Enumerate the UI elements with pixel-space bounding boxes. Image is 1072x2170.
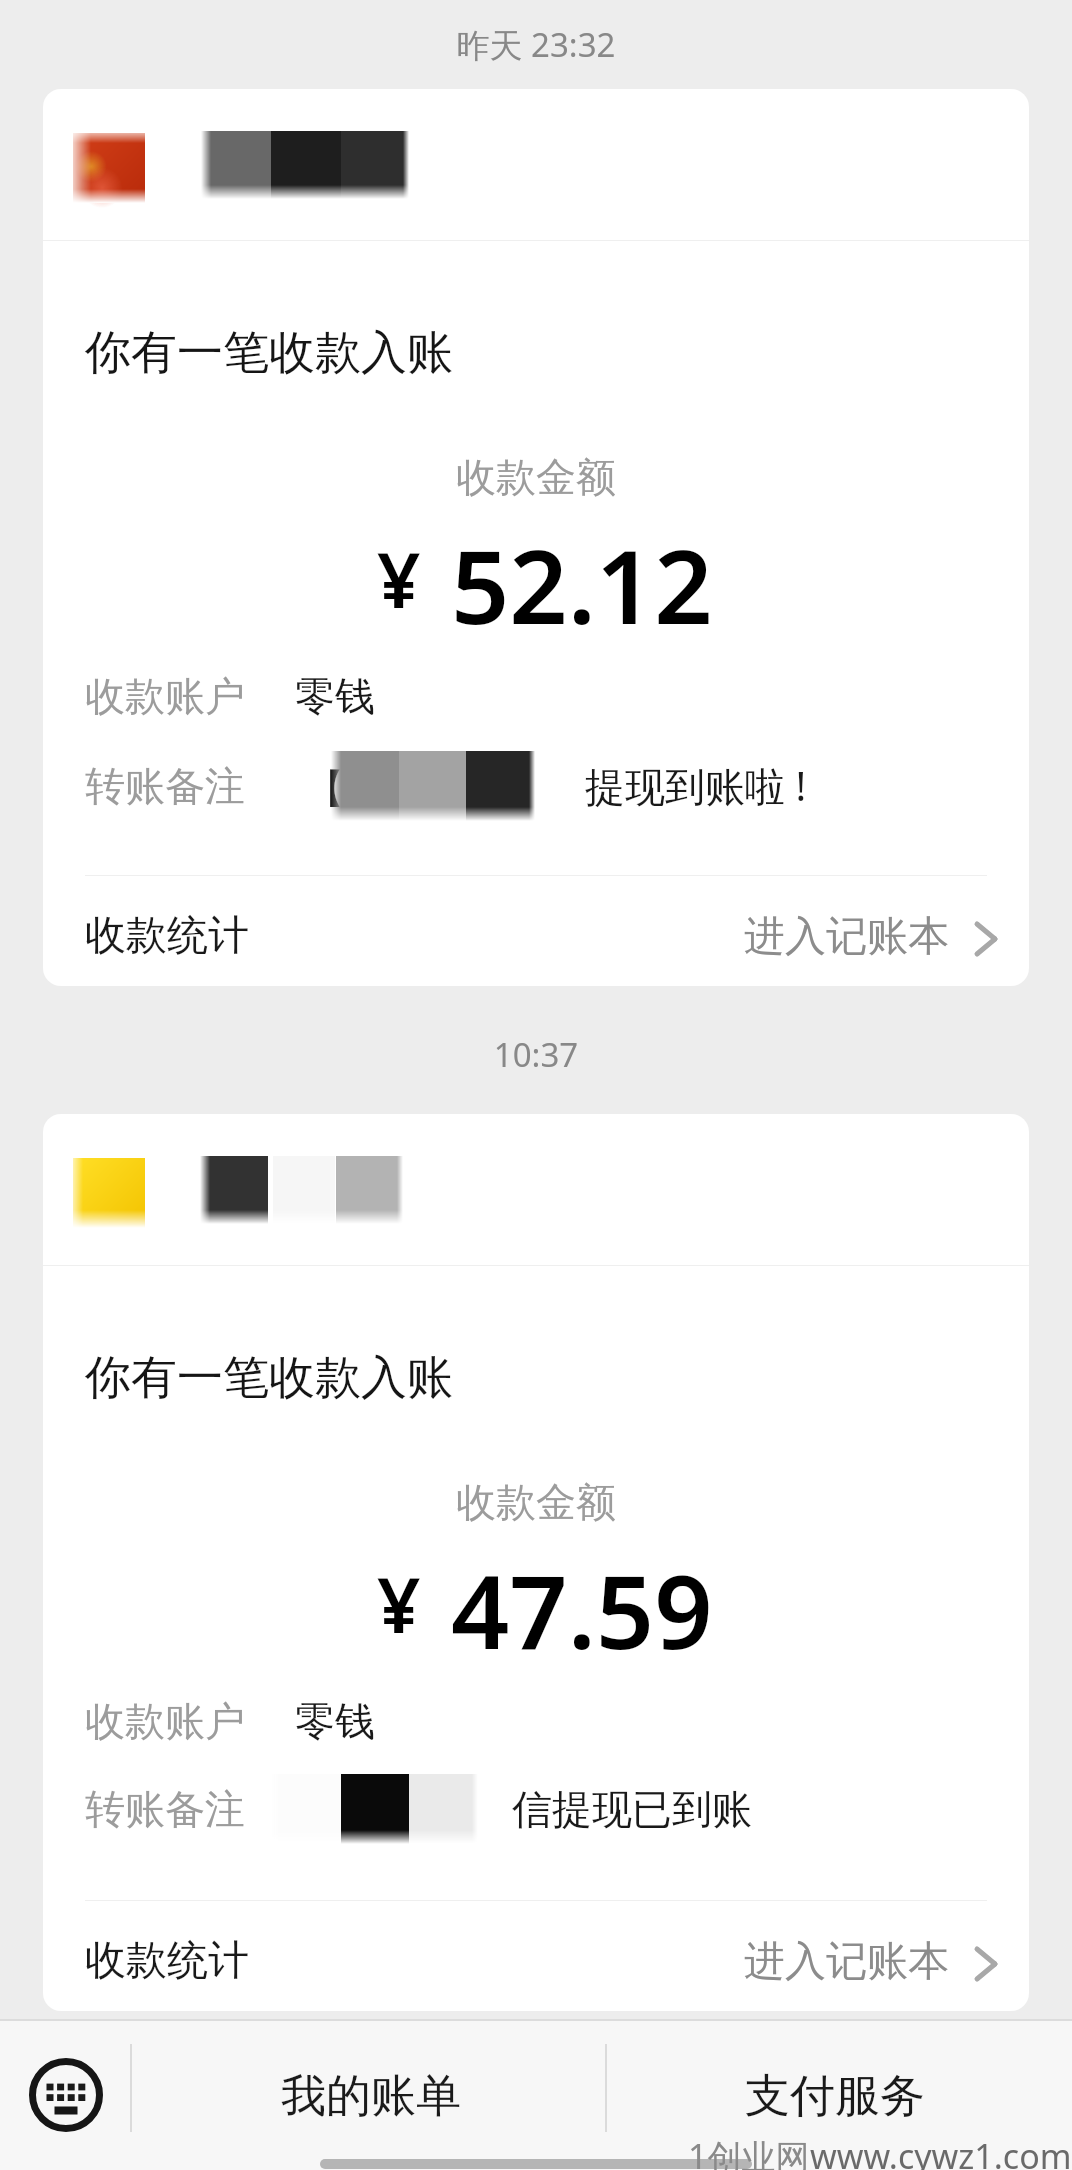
staticText: 收款金额	[43, 452, 1029, 502]
staticText: 昨天 23:32	[0, 22, 1072, 67]
staticText: 收款账户	[85, 1696, 245, 1746]
staticText: 52.12	[451, 515, 713, 654]
staticText: 我的账单	[281, 2068, 461, 2125]
staticText: 零钱	[295, 1696, 375, 1746]
staticText: 【	[305, 763, 345, 813]
staticText: 进入记账本	[744, 1936, 949, 1988]
staticText: 收款统计	[85, 1935, 249, 1987]
button[interactable]: 收款统计	[85, 876, 997, 986]
staticText: 1创业网	[688, 2133, 810, 2170]
staticText: 收款金额	[43, 1477, 1029, 1527]
button[interactable]: Keyboard	[0, 2021, 130, 2155]
button[interactable]: 我的账单	[132, 2021, 605, 2155]
staticText: 进入记账本	[744, 911, 949, 963]
staticText: 收款账户	[85, 671, 245, 721]
button[interactable]: 收款统计	[85, 1901, 997, 2011]
staticText: 信提现已到账	[512, 1784, 752, 1834]
button[interactable]: 你有一笔收款入账	[43, 1114, 1029, 2011]
staticText: 你有一笔收款入账	[85, 1349, 453, 1407]
staticText: 支付服务	[745, 2068, 925, 2125]
button[interactable]: 你有一笔收款入账	[43, 89, 1029, 986]
staticText: 转账备注	[85, 1784, 245, 1834]
staticText: 10:37	[0, 1032, 1072, 1077]
staticText: 你有一笔收款入账	[85, 324, 453, 382]
staticText: ¥	[377, 1552, 421, 1656]
staticText: 转账备注	[85, 761, 245, 811]
button[interactable]: 支付服务	[607, 2021, 1072, 2155]
staticText: 零钱	[295, 671, 375, 721]
staticText: 收款统计	[85, 910, 249, 962]
staticText: www.cywz1.com	[810, 2133, 1072, 2170]
staticText: ¥	[377, 527, 421, 631]
staticText: 47.59	[451, 1540, 713, 1679]
staticText: 提现到账啦 !	[585, 758, 807, 813]
